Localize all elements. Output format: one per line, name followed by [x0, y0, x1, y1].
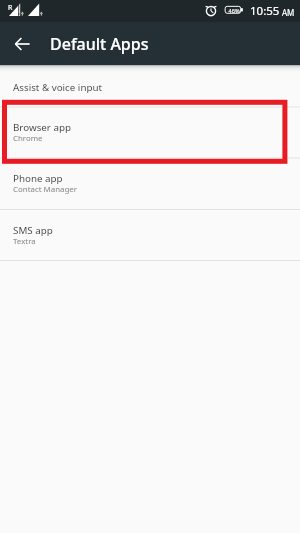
staticText: 46%	[228, 7, 240, 15]
staticText: Phone app	[13, 172, 63, 185]
staticText: Textra	[13, 236, 36, 247]
staticText: AM	[282, 7, 295, 18]
staticText: Chrome	[13, 133, 43, 144]
staticText: Contact Manager	[13, 184, 78, 195]
staticText: Browser app	[13, 121, 72, 134]
staticText: Default Apps	[50, 33, 149, 55]
staticText: 10:55	[250, 3, 280, 19]
button[interactable]: SMS app	[0, 210, 300, 261]
staticText: R	[8, 3, 13, 13]
button[interactable]: Browser app	[0, 107, 300, 158]
staticText: SMS app	[13, 224, 53, 237]
button[interactable]: Back	[0, 22, 46, 65]
button[interactable]: Assist & voice input	[0, 66, 300, 108]
staticText: Assist & voice input	[13, 81, 103, 94]
button[interactable]: Phone app	[0, 158, 300, 210]
